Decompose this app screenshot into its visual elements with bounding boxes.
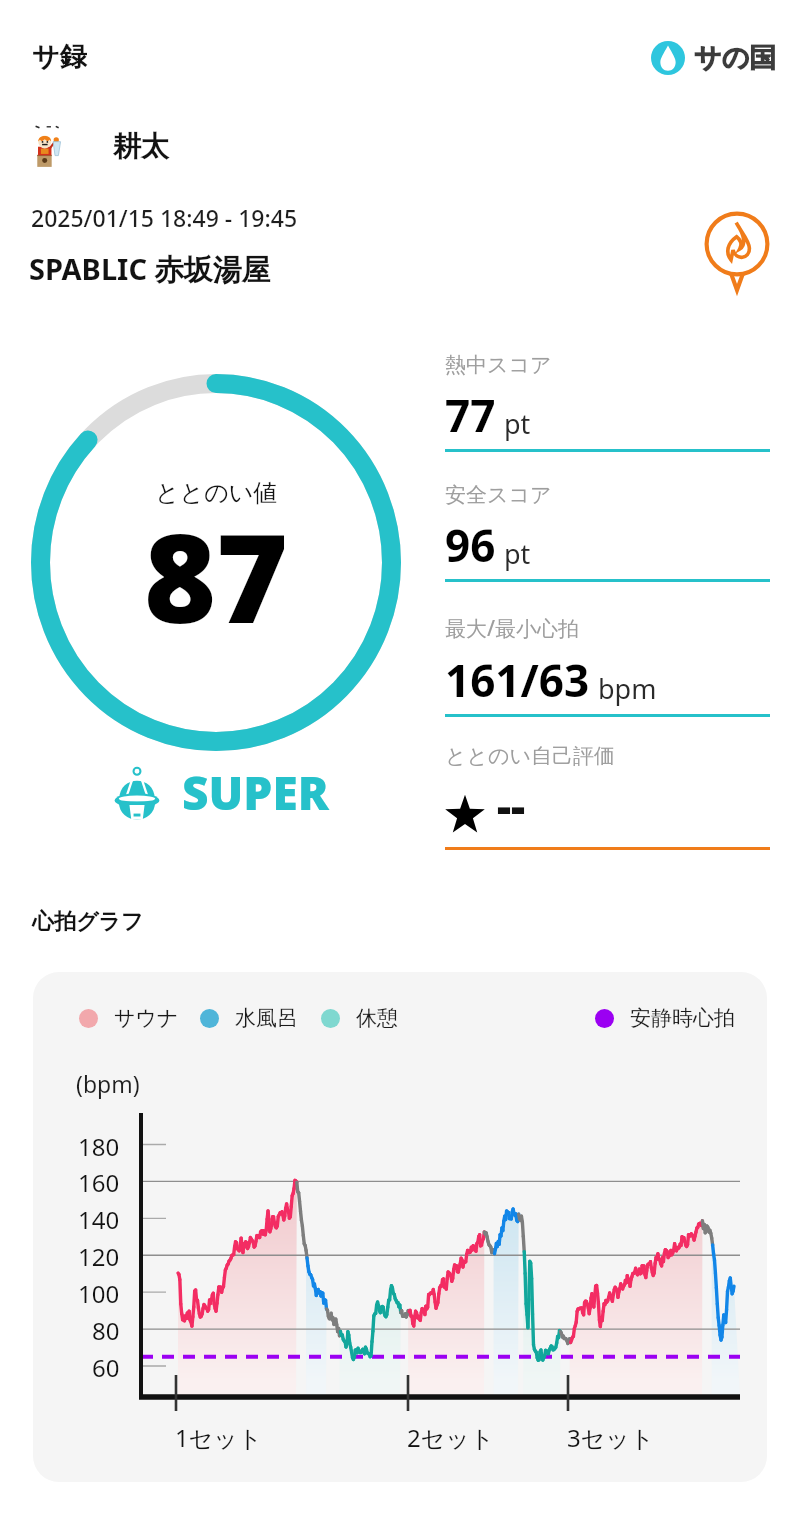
other: サの国ロゴ [651,41,685,75]
staticText: 120 [78,1240,120,1273]
staticText: 60 [92,1351,120,1384]
staticText: 2セット [407,1421,495,1454]
staticText: サ録 [32,40,87,74]
staticText: 87 [144,492,289,660]
button[interactable]: 安全スコア [445,482,770,582]
staticText: 水風呂 [235,1005,298,1031]
staticText: SPABLIC 赤坂湯屋 [29,249,271,289]
button[interactable]: ととのい自己評価 [445,743,770,850]
staticText: 100 [78,1277,120,1310]
staticText: 休憩 [356,1005,398,1031]
staticText: ととのい自己評価 [445,743,615,769]
staticText: pt [504,535,531,572]
staticText: 3セット [567,1421,655,1454]
staticText: (bpm) [76,1068,140,1099]
staticText: 77 [445,385,496,445]
staticText: 耕太 [113,129,169,164]
staticText: bpm [598,670,657,707]
staticText: 最大/最小心拍 [445,614,580,643]
staticText: 96 [445,515,496,575]
button[interactable]: ユーザーアイコン [26,122,169,170]
button[interactable]: 安静時心拍 [595,1005,735,1031]
other: ユーザーアイコン [26,122,74,170]
staticText: -- [497,776,525,836]
staticText: 140 [78,1203,120,1236]
staticText: SUPER [182,761,329,824]
button[interactable]: 水風呂 [200,1005,298,1031]
staticText: 160 [78,1166,120,1199]
staticText: 80 [92,1314,120,1347]
button[interactable]: 休憩 [321,1005,398,1031]
button[interactable]: 最大/最小心拍 [445,614,770,717]
staticText: 熱中スコア [445,352,552,378]
button[interactable]: 熱中スコア [445,352,770,452]
staticText: 1セット [175,1421,263,1454]
staticText: 180 [78,1130,120,1163]
staticText: 161/63 [445,650,590,710]
staticText: 安全スコア [445,482,552,508]
button[interactable]: サウナ [79,1005,179,1031]
staticText: サウナ [114,1005,179,1031]
staticText: サの国 [694,41,777,75]
button[interactable]: サウナ施設アイコン [697,210,777,290]
staticText: 2025/01/15 18:49 - 19:45 [31,202,298,233]
staticText: 心拍グラフ [32,908,144,936]
button[interactable]: SUPERバッジ [114,761,329,824]
staticText: ととのい値 [155,478,278,508]
staticText: pt [504,405,531,442]
button[interactable]: サの国ロゴ [651,41,777,75]
button[interactable]: サ録 [32,40,87,74]
staticText: 安静時心拍 [630,1005,735,1031]
other: SUPERバッジ [114,764,160,822]
